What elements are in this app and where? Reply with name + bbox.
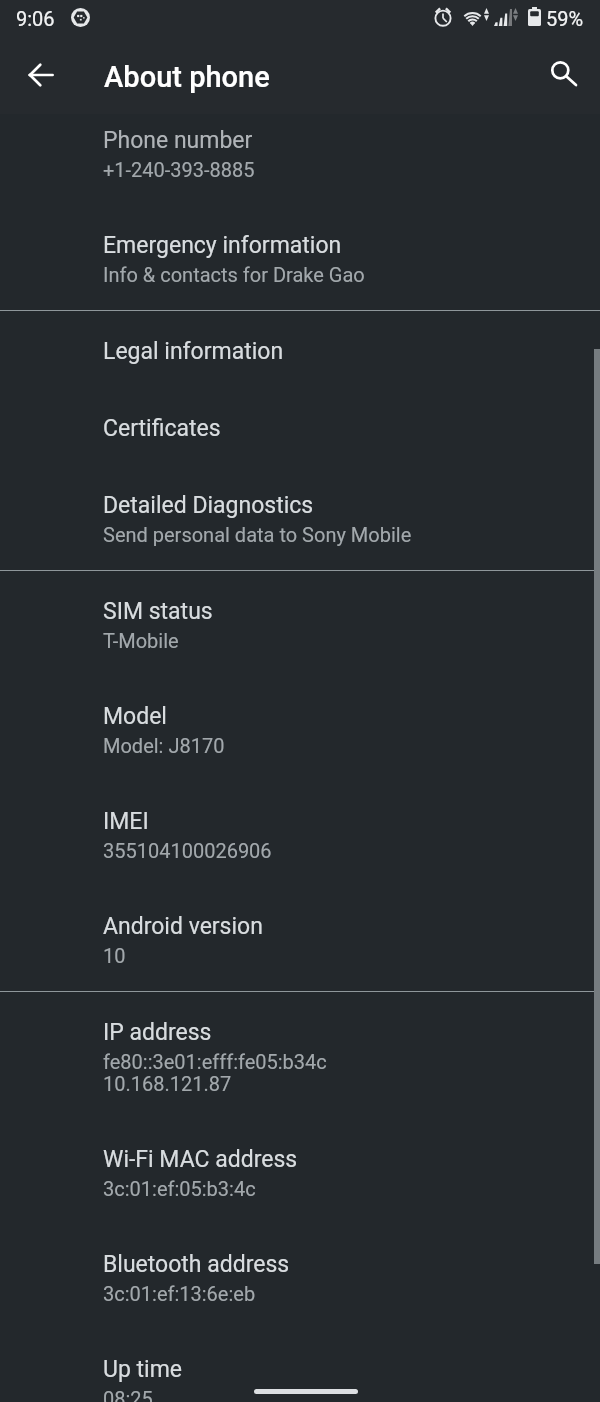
button[interactable]: Bluetooth address (0, 1224, 600, 1329)
staticText: 10 (103, 944, 126, 967)
button[interactable]: Certificates (0, 388, 600, 465)
button[interactable]: IMEI (0, 781, 600, 886)
button[interactable]: Up time (0, 1329, 600, 1388)
staticText: fe80::3e01:efff:fe05:b34c (103, 1050, 327, 1073)
button[interactable]: Navigate up (13, 47, 69, 103)
staticText: Model (103, 703, 167, 730)
staticText: 59% (546, 7, 584, 30)
staticText: Up time (103, 1356, 183, 1383)
staticText: T-Mobile (103, 629, 179, 652)
staticText: 08:25 (103, 1387, 153, 1402)
staticText: Android version (103, 913, 263, 940)
button[interactable]: Emergency information (0, 205, 600, 310)
staticText: Emergency information (103, 232, 342, 259)
staticText: Info & contacts for Drake Gao (103, 263, 365, 286)
staticText: 3c:01:ef:05:b3:4c (103, 1177, 256, 1200)
staticText: IMEI (103, 808, 149, 835)
staticText: Model: J8170 (103, 734, 225, 757)
staticText: Certificates (103, 415, 221, 442)
button[interactable]: SIM status (0, 571, 600, 676)
staticText: 10.168.121.87 (103, 1072, 232, 1095)
staticText: 355104100026906 (103, 839, 272, 862)
staticText: 3c:01:ef:13:6e:eb (103, 1282, 256, 1305)
staticText: IP address (103, 1019, 212, 1046)
button[interactable]: IP address (0, 992, 600, 1119)
staticText: +1-240-393-8885 (103, 158, 255, 181)
staticText: Bluetooth address (103, 1251, 290, 1278)
staticText: Detailed Diagnostics (103, 492, 314, 519)
button[interactable]: Wi-Fi MAC address (0, 1119, 600, 1224)
button[interactable]: Phone number (0, 100, 600, 205)
button[interactable]: Android version (0, 886, 600, 991)
button[interactable]: Search (537, 47, 593, 103)
button[interactable]: Legal information (0, 311, 600, 388)
button[interactable]: Detailed Diagnostics (0, 465, 600, 570)
staticText: Send personal data to Sony Mobile (103, 523, 412, 546)
staticText: About phone (104, 60, 270, 94)
staticText: Legal information (103, 338, 284, 365)
staticText: SIM status (103, 598, 213, 625)
staticText: 9:06 (16, 7, 55, 30)
staticText: Wi-Fi MAC address (103, 1146, 298, 1173)
button[interactable]: Model (0, 676, 600, 781)
staticText: Phone number (103, 127, 253, 154)
